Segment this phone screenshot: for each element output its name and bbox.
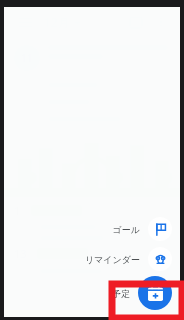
staticText: リマインダー	[84, 254, 140, 265]
staticText: ゴール	[112, 224, 140, 235]
button[interactable]: Close menu	[4, 7, 180, 317]
staticText: 予定	[112, 288, 130, 299]
button[interactable]: 予定	[112, 276, 172, 310]
button[interactable]: リマインダー	[84, 247, 172, 271]
button[interactable]: ゴール	[112, 217, 172, 241]
